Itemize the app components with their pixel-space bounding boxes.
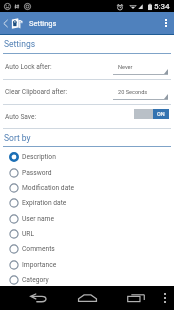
staticText: Sort by [4,133,31,143]
other: Navigate up [3,19,8,28]
button[interactable]: Auto Save: [0,105,174,128]
staticText: Clear Clipboard after: [5,88,67,96]
staticText: Importance [22,261,57,269]
staticText: Comments [22,245,55,253]
button[interactable]: Comments [0,241,174,256]
button[interactable]: More options [158,12,174,34]
button[interactable]: Clear Clipboard after: [0,80,174,104]
button[interactable]: Password [0,165,174,180]
button[interactable]: Auto Lock after: [0,54,174,79]
staticText: 20 Seconds [118,89,148,96]
button[interactable]: Expiration date [0,195,174,210]
button[interactable]: Home [71,286,104,310]
button[interactable]: Description [0,149,174,164]
button[interactable]: More options [156,286,174,310]
button[interactable]: Recent apps [119,286,152,310]
button[interactable]: Modification date [0,180,174,195]
button[interactable]: Category [0,272,174,287]
button[interactable]: User name [0,211,174,226]
button[interactable]: Back [22,286,55,310]
button[interactable]: Navigate up [0,18,60,29]
staticText: Settings [4,39,36,49]
staticText: Auto Lock after: [5,63,52,71]
button[interactable]: URL [0,226,174,241]
button[interactable]: ON [134,118,169,128]
staticText: Settings [29,19,57,28]
staticText: Description [22,153,56,161]
button[interactable]: Importance [0,257,174,272]
staticText: Never [118,64,133,71]
staticText: Expiration date [22,199,67,207]
staticText: 5:34 [154,2,170,11]
staticText: User name [22,215,55,223]
staticText: Auto Save: [5,113,37,121]
staticText: Category [22,276,49,284]
staticText: URL [22,230,35,238]
staticText: Modification date [22,184,75,192]
staticText: Password [22,169,52,177]
staticText: ON [157,111,165,117]
